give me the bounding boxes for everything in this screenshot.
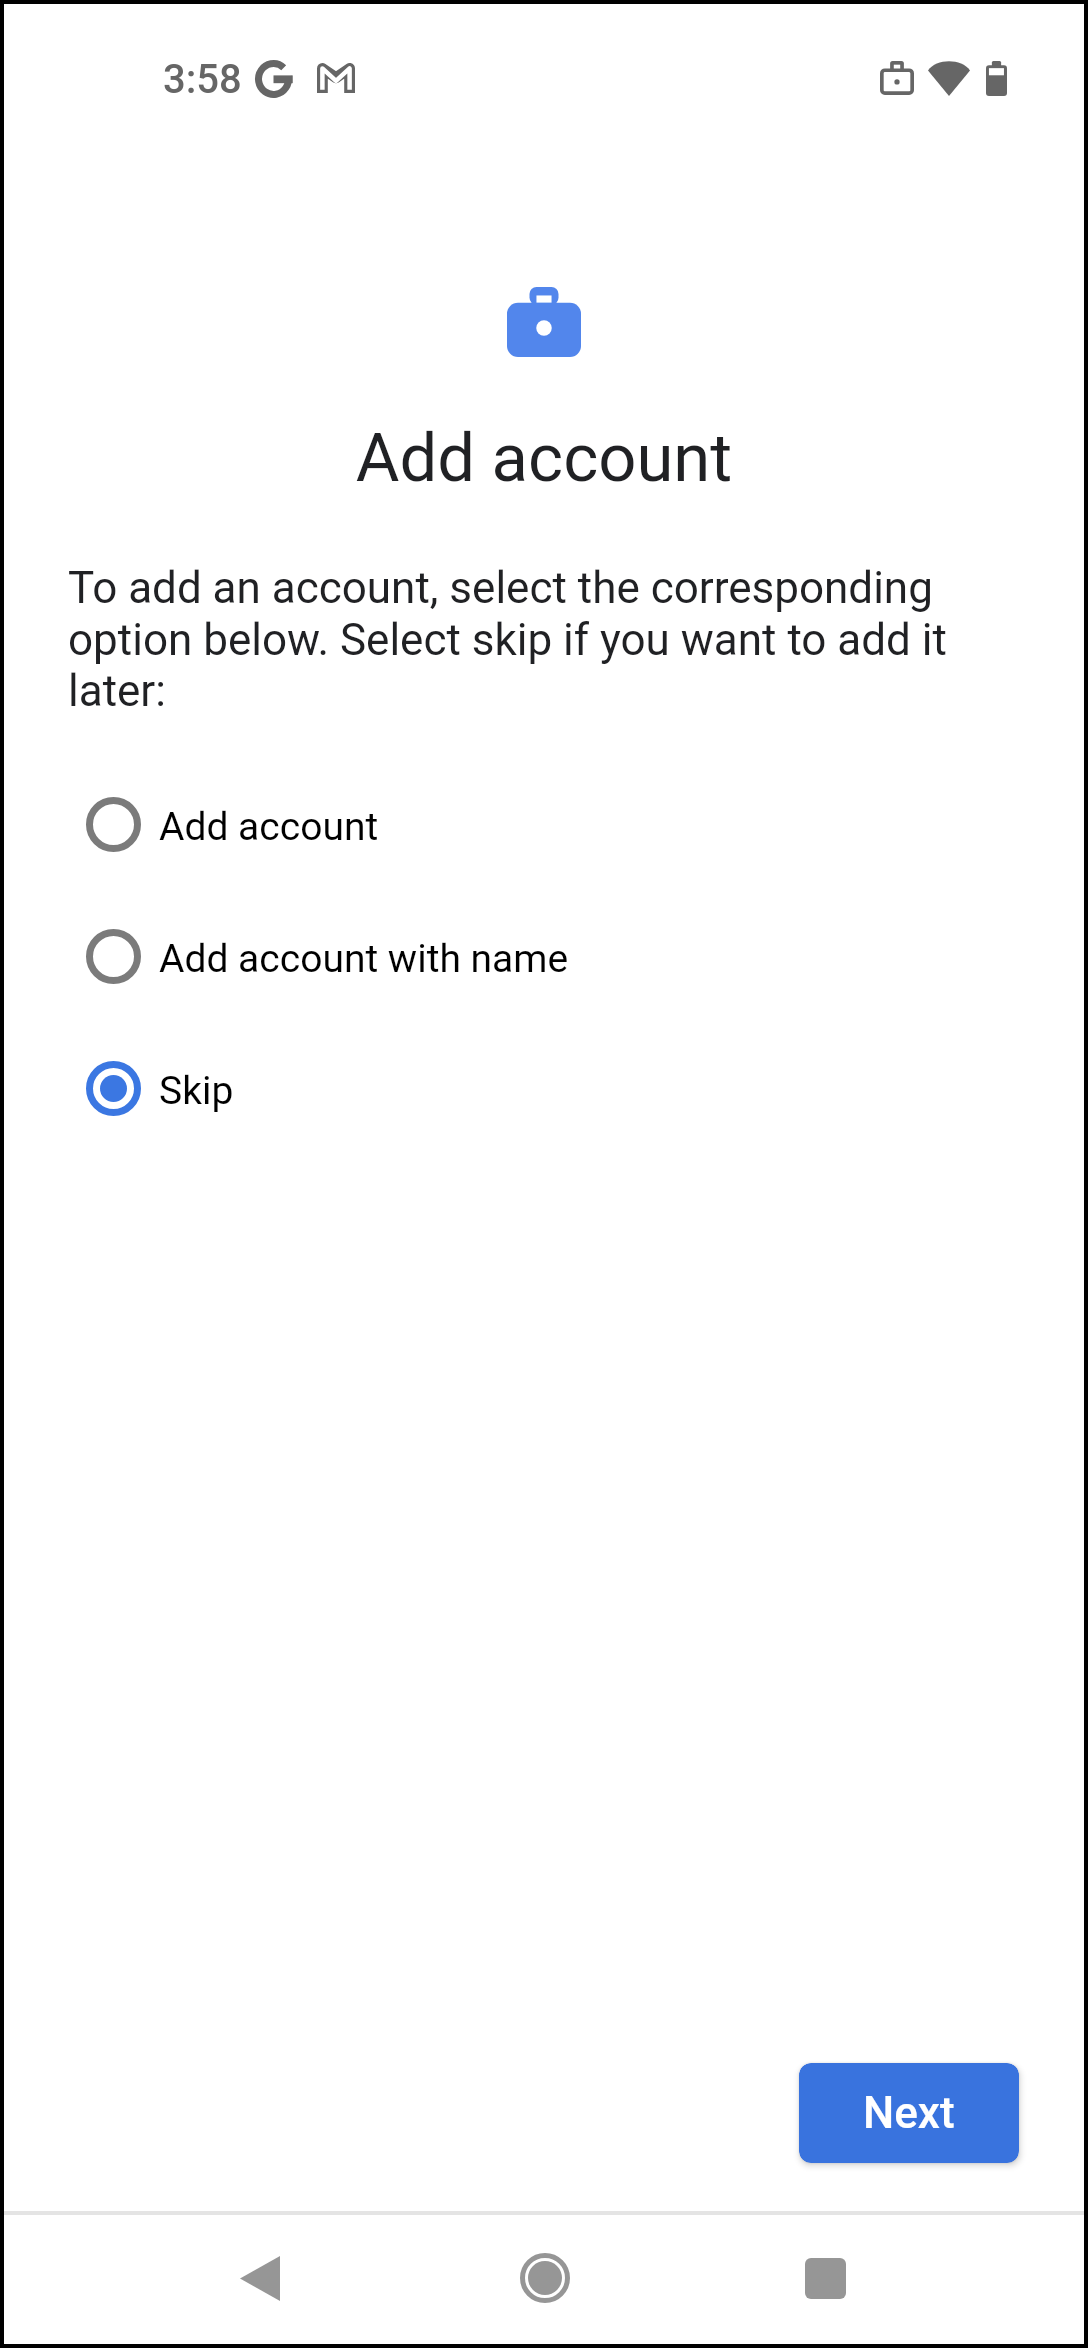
staticText: Add account with name [159, 936, 569, 982]
button[interactable]: Add account [0, 775, 1088, 874]
button[interactable]: Next [799, 2063, 1019, 2163]
staticText: Skip [159, 1068, 234, 1114]
staticText: Add account [159, 804, 379, 850]
button[interactable]: Back [196, 2214, 324, 2342]
staticText: Next [863, 2087, 955, 2139]
staticText: To add an account, select the correspond… [68, 562, 988, 717]
button[interactable]: Recent apps [761, 2214, 889, 2342]
button[interactable]: Skip [0, 1039, 1088, 1138]
staticText: 3:58 [163, 56, 242, 103]
staticText: Add account [0, 419, 1088, 498]
button[interactable]: Add account with name [0, 907, 1088, 1006]
button[interactable]: Home [481, 2214, 609, 2342]
